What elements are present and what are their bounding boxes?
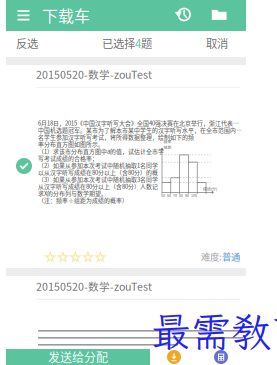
button[interactable]: Rating [45, 252, 109, 263]
staticText: 取消 [206, 35, 228, 51]
staticText: 下载车 [42, 3, 90, 27]
staticText: 成绩(分) [203, 186, 217, 191]
button[interactable]: Calculator [214, 350, 228, 364]
staticText: 写考试成绩的合格率； [38, 154, 98, 162]
button[interactable]: 反选 [16, 35, 50, 51]
staticText: （1）求该市分布直方图中a的值，试估计全市学 [38, 147, 164, 155]
staticText: 20150520-数学-zouTest [36, 66, 152, 82]
staticText: （注：频率÷组距为成绩的概率） [38, 196, 128, 204]
staticText: 6月18日，2015《中国汉字听写大会》全国40强决赛在北京举行，浙江代表二届“… [38, 119, 244, 127]
staticText: 题 [141, 35, 152, 51]
staticText: 已选择 [102, 35, 135, 51]
button[interactable]: Downloads folder [210, 6, 228, 24]
button[interactable]: 发送给分配 [6, 348, 150, 365]
staticText: 中国机选题冠军。某市为了解本市某中学生的汉字听写水平，在全市范围内随机抽取了百 [38, 126, 244, 134]
staticText: （3）如果从参加本次考试中随机抽取3名同学 [38, 175, 158, 183]
staticText: 50 60 70 80 90 100 [161, 193, 197, 198]
button[interactable]: History [175, 6, 193, 24]
staticText: 普通 [222, 250, 240, 263]
staticText: 频率 [163, 139, 171, 144]
staticText: 20150520-数学-zouTest [36, 278, 152, 294]
staticText: 4 [135, 35, 141, 51]
button[interactable]: Selected [16, 158, 32, 174]
staticText: 发送给分配 [48, 348, 108, 365]
staticText: 名学生参加汉字听写考试，将所得数据整理，绘制如下的频 [38, 133, 194, 141]
button[interactable]: Download [167, 350, 181, 364]
staticText: （2）如果从参加本次考试中随机抽取1名同学 [38, 161, 158, 169]
staticText: 组距 [163, 144, 171, 150]
staticText: 率分布直方图如图所示。 [38, 140, 104, 148]
staticText: 以从汉字听写成绩在80分以上（含80分）的概 [38, 168, 158, 176]
staticText: 难度: [201, 250, 222, 263]
staticText: 最需教育 [151, 305, 277, 357]
staticText: 从汉字听写成绩在80分以上（含80分）人数记 [38, 182, 158, 190]
button[interactable]: 取消 [206, 35, 240, 51]
button[interactable]: Menu [14, 6, 33, 24]
staticText: 求X的分布列与数学期望。 [38, 189, 107, 197]
staticText: 反选 [16, 35, 38, 51]
